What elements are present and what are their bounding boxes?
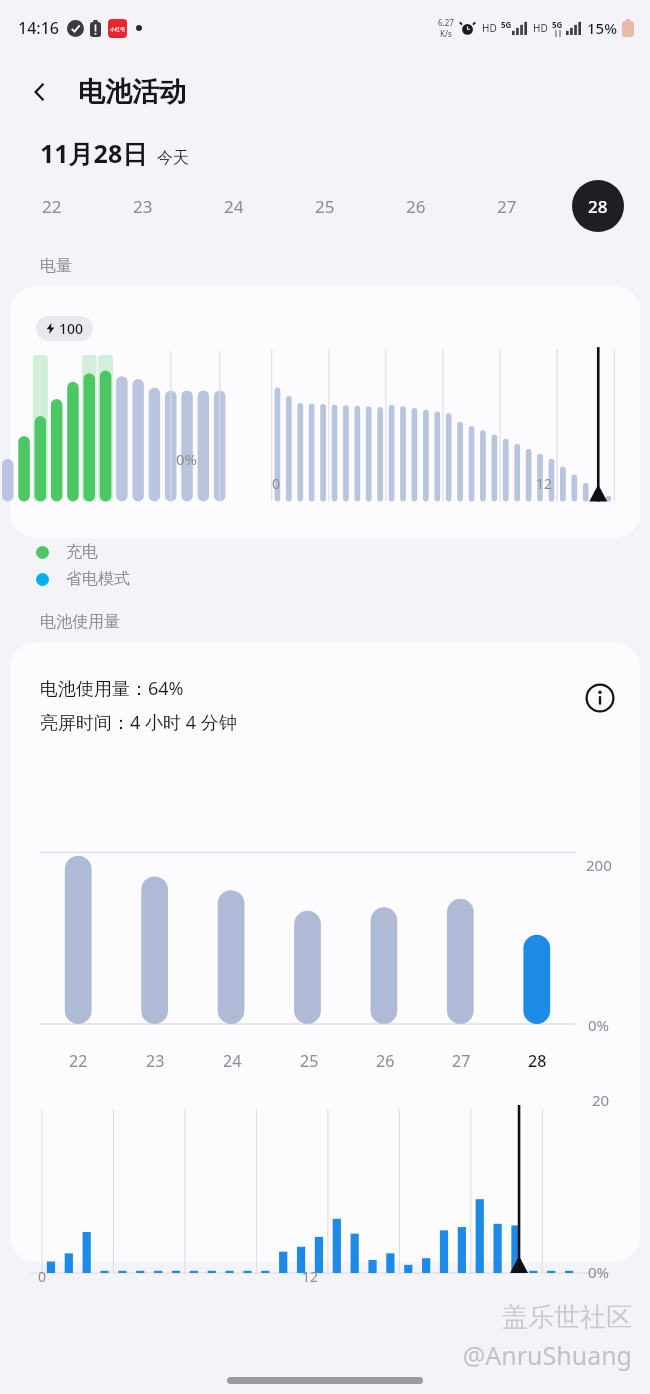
staticText: 电量 (40, 256, 72, 276)
staticText: 22 (69, 1050, 88, 1072)
button[interactable]: 23 (117, 180, 169, 232)
staticText: 15% (587, 18, 617, 38)
staticText: 12 (302, 1267, 319, 1286)
button[interactable]: 24 (208, 180, 260, 232)
staticText: 26 (406, 195, 426, 218)
staticText: 5G (552, 19, 563, 30)
staticText: 省电模式 (66, 569, 130, 589)
staticText: 14:16 (18, 17, 59, 39)
button[interactable] (10, 286, 640, 538)
staticText: @AnruShuang (462, 1338, 632, 1372)
staticText: HD (533, 21, 548, 35)
staticText: 22 (42, 195, 62, 218)
staticText: HD (482, 21, 497, 35)
staticText: 20 (592, 1090, 610, 1110)
staticText: 电池使用量 (40, 612, 120, 632)
button[interactable]: 27 (481, 180, 533, 232)
staticText: 充电 (66, 542, 98, 562)
button[interactable]: Information (578, 676, 622, 720)
staticText: 23 (133, 195, 153, 218)
staticText: 电池使用量：64% (40, 676, 184, 701)
staticText: 23 (146, 1050, 165, 1072)
staticText: 小红书 (110, 26, 125, 32)
staticText: 27 (497, 195, 517, 218)
staticText: 盖乐世社区 (502, 1301, 632, 1334)
staticText: 28 (588, 195, 608, 218)
staticText: 24 (223, 1050, 242, 1072)
button[interactable]: 26 (390, 180, 442, 232)
button[interactable]: 25 (299, 180, 351, 232)
button[interactable]: 28 (572, 180, 624, 232)
button[interactable]: Back (14, 66, 66, 118)
staticText: 0 (272, 474, 281, 493)
staticText: 28 (528, 1050, 547, 1072)
staticText: 11月28日 (40, 136, 148, 170)
staticText: 24 (224, 195, 244, 218)
staticText: K/s (440, 28, 452, 39)
staticText: 5G (501, 19, 512, 30)
staticText: 0% (588, 1262, 610, 1282)
staticText: 100 (59, 319, 84, 338)
staticText: 0 (38, 1267, 47, 1286)
staticText: 27 (452, 1050, 471, 1072)
staticText: 电池活动 (78, 75, 186, 109)
staticText: 今天 (157, 148, 189, 168)
staticText: 12 (536, 474, 553, 493)
staticText: 6.27 (438, 17, 454, 28)
staticText: 亮屏时间：4 小时 4 分钟 (40, 710, 237, 735)
staticText: 25 (300, 1050, 319, 1072)
staticText: 0% (176, 449, 198, 469)
staticText: 26 (376, 1050, 395, 1072)
button[interactable]: 22 (26, 180, 78, 232)
staticText: 0% (588, 1015, 610, 1035)
staticText: 25 (315, 195, 335, 218)
staticText: 200 (586, 855, 612, 875)
